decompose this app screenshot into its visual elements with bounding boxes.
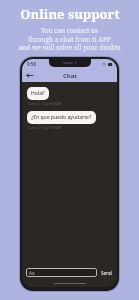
staticText: Hola!! [31,90,45,97]
button[interactable]: Send [100,268,113,277]
staticText: Online support [20,5,120,23]
button[interactable]: Aa [26,268,97,277]
button[interactable]: Back [22,69,36,82]
staticText: Aa [29,270,35,276]
staticText: 9:58 [27,61,36,67]
staticText: Chat [63,72,77,80]
button[interactable]: Hola!! [27,87,49,100]
staticText: ¿En que puedo ayudarte? [31,114,92,121]
staticText: Send [101,270,112,276]
staticText: You can contact us through a chat from t… [18,26,121,52]
button[interactable]: ¿En que puedo ayudarte? [27,111,96,124]
staticText: Lunes, 21 hoy 9:58 AM [28,126,62,130]
staticText: Lunes, 21 hoy 9:58 AM [28,102,62,106]
